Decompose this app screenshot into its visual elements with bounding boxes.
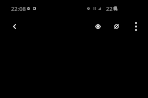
button[interactable]: Hide <box>105 14 127 38</box>
button[interactable]: More options <box>125 14 147 38</box>
staticText: 22:08 <box>11 5 26 13</box>
button[interactable]: Navigate up <box>3 14 25 38</box>
button[interactable]: Show details <box>87 14 109 38</box>
staticText: 22% <box>106 5 118 13</box>
